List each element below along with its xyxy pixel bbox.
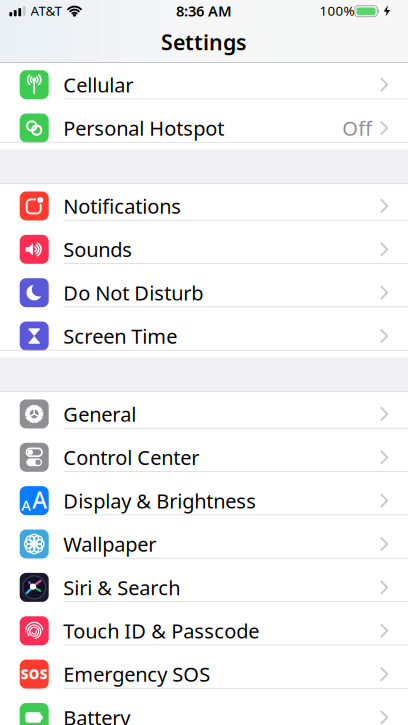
staticText: AT&T bbox=[30, 2, 61, 19]
staticText: Control Center bbox=[63, 444, 199, 471]
staticText: Off bbox=[342, 115, 372, 141]
staticText: Battery bbox=[63, 704, 130, 725]
staticText: Cellular bbox=[63, 71, 133, 98]
button[interactable]: SOS bbox=[0, 652, 408, 696]
staticText: Emergency SOS bbox=[63, 661, 210, 687]
button[interactable]: A bbox=[0, 479, 408, 522]
button[interactable]: General bbox=[0, 392, 408, 436]
staticText: Wallpaper bbox=[63, 531, 156, 557]
button[interactable]: Personal Hotspot bbox=[0, 106, 408, 150]
button[interactable]: Do Not Disturb bbox=[0, 271, 408, 314]
staticText: Siri & Search bbox=[63, 574, 180, 601]
staticText: Screen Time bbox=[63, 323, 177, 349]
staticText: Do Not Disturb bbox=[63, 279, 203, 306]
button[interactable]: Cellular bbox=[0, 63, 408, 106]
staticText: Sounds bbox=[63, 236, 132, 263]
staticText: 100% bbox=[319, 2, 354, 19]
staticText: A bbox=[32, 485, 47, 515]
button[interactable]: Wallpaper bbox=[0, 522, 408, 566]
button[interactable]: Control Center bbox=[0, 436, 408, 479]
staticText: Personal Hotspot bbox=[63, 115, 224, 141]
staticText: Touch ID & Passcode bbox=[63, 617, 259, 644]
staticText: Settings bbox=[161, 28, 247, 56]
button[interactable]: Siri & Search bbox=[0, 566, 408, 609]
button[interactable]: Touch ID & Passcode bbox=[0, 609, 408, 652]
staticText: General bbox=[63, 401, 136, 427]
button[interactable]: Sounds bbox=[0, 228, 408, 271]
staticText: Notifications bbox=[63, 193, 181, 219]
button[interactable]: Battery bbox=[0, 696, 408, 725]
button[interactable]: Screen Time bbox=[0, 314, 408, 358]
button[interactable]: Notifications bbox=[0, 184, 408, 228]
staticText: 8:36 AM bbox=[176, 1, 232, 20]
staticText: A bbox=[21, 495, 31, 515]
staticText: SOS bbox=[21, 665, 48, 683]
staticText: Display & Brightness bbox=[63, 487, 256, 514]
